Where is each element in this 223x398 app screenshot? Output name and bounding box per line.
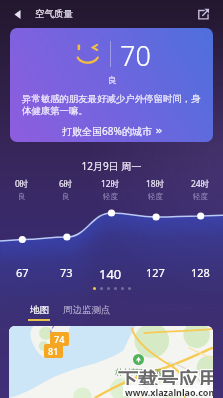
staticText: 林村郊野公园	[115, 367, 163, 377]
button[interactable]: 70	[10, 28, 213, 142]
button[interactable]: 地图	[28, 304, 50, 321]
staticText: 下载号应用	[119, 367, 213, 392]
staticText: 良	[18, 192, 26, 201]
staticText: 18时	[146, 178, 165, 190]
staticText: 轻度	[148, 192, 163, 201]
staticText: 0时	[15, 178, 29, 190]
button[interactable]: Map	[9, 326, 213, 398]
staticText: 下载号应用	[118, 369, 213, 394]
staticText: 下载号应用	[119, 368, 213, 393]
staticText: 24时	[191, 178, 210, 190]
staticText: 127	[146, 265, 165, 280]
staticText: 下载号应用	[118, 367, 213, 392]
staticText: 良	[62, 192, 70, 201]
staticText: 12月9日 周一	[0, 159, 223, 173]
staticText: 良	[108, 75, 117, 86]
button[interactable]: Share	[192, 3, 214, 25]
staticText: 异常敏感的朋友最好减少户外停留时间，身体健康第一嘛。	[22, 93, 205, 117]
staticText: 下载号应用	[117, 369, 213, 394]
button[interactable]: 74	[54, 333, 65, 345]
staticText: www.xlazalnlao.com	[125, 386, 213, 398]
staticText: 空气质量	[35, 8, 73, 20]
staticText: 128	[191, 265, 210, 280]
staticText: 下载号应用	[119, 369, 213, 394]
staticText: 67	[16, 265, 29, 280]
staticText: 下载号应用	[117, 367, 213, 392]
staticText: 6时	[59, 178, 73, 190]
staticText: 轻度	[103, 192, 118, 201]
staticText: 地图	[30, 304, 49, 316]
button[interactable]: Back	[6, 3, 28, 25]
staticText: 81	[48, 345, 59, 357]
staticText: 12时	[101, 178, 120, 190]
button[interactable]: 打败全国68%的城市	[62, 124, 163, 138]
staticText: 轻度	[193, 192, 208, 201]
staticText: 140	[99, 265, 122, 283]
button[interactable]: 81	[48, 345, 59, 357]
staticText: 74	[54, 333, 65, 345]
staticText: 下载号应用	[117, 368, 213, 393]
button[interactable]: 周边监测点	[63, 304, 111, 316]
staticText: 下载号应用	[118, 368, 213, 393]
staticText: 打败全国68%的城市	[62, 124, 152, 138]
staticText: 70	[120, 37, 151, 74]
staticText: 周边监测点	[63, 304, 111, 316]
staticText: 73	[60, 265, 73, 280]
